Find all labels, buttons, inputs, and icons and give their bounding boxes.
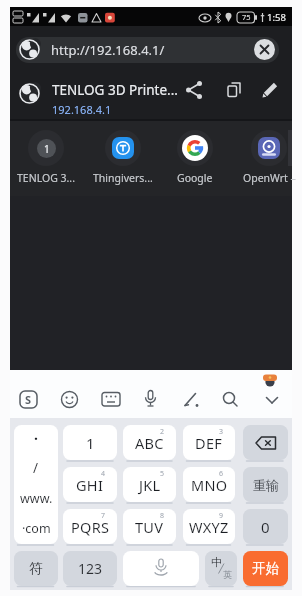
button[interactable] [256, 75, 284, 103]
button[interactable] [221, 390, 240, 409]
staticText: WXYZ [189, 517, 229, 537]
staticText: 6 [219, 469, 224, 479]
staticText: / [33, 459, 39, 477]
button[interactable] [101, 391, 121, 408]
button[interactable]: 重输 [243, 467, 288, 502]
staticText: MNO [191, 475, 228, 495]
button[interactable]: DEF [183, 425, 235, 460]
staticText: Google [177, 171, 213, 185]
button[interactable] [142, 389, 159, 409]
button[interactable] [263, 393, 281, 407]
staticText: 1 [86, 433, 95, 453]
button[interactable] [220, 76, 248, 104]
staticText: OpenWrt – [243, 171, 296, 185]
button[interactable] [254, 39, 275, 60]
staticText: http://192.168.4.1/ [51, 41, 165, 59]
button[interactable] [243, 425, 288, 460]
button[interactable]: GHI [63, 467, 117, 502]
staticText: ·com [22, 520, 51, 537]
staticText: 192.168.4.1 [52, 102, 112, 117]
staticText: 符 [29, 560, 43, 577]
staticText: PQRS [71, 517, 110, 537]
button[interactable]: 开始 [243, 551, 288, 586]
staticText: 75 [242, 12, 251, 22]
staticText: 3 [219, 427, 224, 437]
staticText: 4 [101, 469, 106, 479]
button[interactable] [22, 126, 70, 188]
button[interactable]: 符 [14, 551, 58, 586]
button[interactable]: PQRS [63, 509, 117, 544]
button[interactable]: 0 [243, 509, 288, 544]
staticText: 中 [211, 555, 222, 569]
button[interactable] [180, 76, 208, 104]
staticText: 英 [223, 569, 232, 580]
staticText: JKL [139, 475, 161, 495]
staticText: www. [20, 490, 53, 507]
button[interactable] [205, 551, 237, 586]
button[interactable] [10, 68, 292, 120]
staticText: 开始 [252, 560, 279, 577]
staticText: DEF [195, 433, 223, 453]
button[interactable] [16, 37, 279, 63]
staticText: 0 [261, 517, 270, 537]
button[interactable] [99, 126, 147, 188]
button[interactable] [171, 126, 219, 188]
staticText: Thingivers... [93, 171, 153, 185]
button[interactable] [181, 390, 201, 410]
button[interactable]: S [19, 390, 38, 409]
staticText: ABC [135, 433, 164, 453]
staticText: 123 [78, 559, 103, 578]
button[interactable]: MNO [183, 467, 235, 502]
button[interactable]: JKL [123, 467, 176, 502]
button[interactable] [245, 126, 293, 188]
button[interactable] [123, 551, 199, 586]
button[interactable] [14, 425, 58, 544]
staticText: 5 [160, 469, 165, 479]
staticText: 1 [44, 142, 50, 156]
staticText: 2 [160, 427, 165, 437]
staticText: TUV [135, 517, 164, 537]
staticText: 8 [160, 511, 165, 521]
button[interactable]: ABC [123, 425, 176, 460]
staticText: · [34, 429, 38, 448]
button[interactable] [59, 389, 80, 410]
button[interactable]: 1 [63, 425, 117, 460]
staticText: 7 [101, 511, 106, 521]
staticText: TENLOG 3D Printe... [52, 81, 178, 99]
button[interactable]: WXYZ [183, 509, 235, 544]
staticText: TENLOG 3... [17, 171, 75, 185]
staticText: GHI [76, 475, 104, 495]
staticText: S [25, 392, 32, 407]
staticText: 1:58 [267, 11, 286, 24]
button[interactable]: 123 [63, 551, 117, 586]
staticText: 9 [219, 511, 224, 521]
staticText: 重输 [253, 477, 279, 493]
button[interactable]: TUV [123, 509, 176, 544]
